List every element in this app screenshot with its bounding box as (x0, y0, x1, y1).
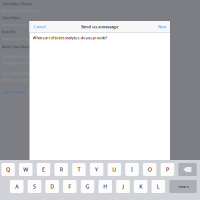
staticText: W (23, 166, 28, 173)
button[interactable]: T (72, 163, 86, 176)
staticText: Next (158, 24, 166, 29)
staticText: Send us a message (81, 24, 118, 29)
staticText: A (15, 183, 18, 190)
staticText: P (166, 166, 169, 173)
staticText: UserVoice (2, 15, 20, 20)
staticText: UserVoice helps you gather feedback from… (2, 54, 105, 59)
staticText: I (131, 166, 133, 173)
staticText: Q (6, 166, 10, 173)
staticText: Add UserVoice (2, 44, 30, 49)
button[interactable]: Cancel (33, 20, 57, 33)
button[interactable]: J (116, 180, 130, 193)
staticText: E (42, 166, 45, 173)
button[interactable]: return (169, 180, 197, 193)
staticText: T (77, 166, 80, 173)
button[interactable]: Y (90, 163, 103, 176)
button[interactable]: UserVoice Demo (2, 1, 112, 15)
button[interactable]: UserVoice (2, 15, 112, 29)
staticText: H (103, 183, 107, 190)
button[interactable]: I (125, 163, 139, 176)
button[interactable]: H (98, 180, 112, 193)
staticText: directly in your app with the full SDK. (2, 77, 64, 82)
staticText: The Help Center lets your customers find… (2, 71, 89, 76)
button[interactable]: Initech (2, 29, 112, 43)
staticText: initech.uservoice.com (2, 36, 40, 41)
staticText: feedback.uservoice.com (2, 22, 44, 27)
staticText: F (68, 183, 71, 190)
button[interactable]: R (54, 163, 68, 176)
staticText: K (139, 183, 142, 190)
staticText: J (122, 183, 123, 190)
staticText: To get started, add your UserVoice site … (2, 60, 80, 66)
staticText: Initech (2, 29, 16, 34)
button[interactable]: Delete (178, 163, 197, 176)
button[interactable]: U (107, 163, 121, 176)
staticText: D (50, 183, 54, 190)
button[interactable]: P (161, 163, 174, 176)
staticText: return (177, 184, 188, 189)
button[interactable]: Learn more (2, 89, 24, 95)
button[interactable]: Q (1, 163, 15, 176)
staticText: UserVoice Demo (2, 1, 32, 6)
staticText: L (157, 183, 160, 190)
staticText: Y (95, 166, 98, 173)
staticText: S (33, 183, 36, 190)
button[interactable]: S (28, 180, 41, 193)
button[interactable]: E (37, 163, 50, 176)
button[interactable]: Next (142, 20, 166, 33)
staticText: U (112, 166, 116, 173)
button[interactable]: A (10, 180, 23, 193)
staticText: Learn more (2, 89, 24, 94)
button[interactable]: D (45, 180, 59, 193)
button[interactable]: L (152, 180, 165, 193)
button[interactable]: F (63, 180, 77, 193)
staticText: O (148, 166, 152, 173)
button[interactable]: W (19, 163, 32, 176)
button[interactable]: G (81, 180, 94, 193)
staticText: R (60, 166, 63, 173)
staticText: Cancel (33, 24, 45, 29)
staticText: What sort of ticket analytics do you pro… (32, 35, 107, 40)
button[interactable]: K (134, 180, 147, 193)
button[interactable]: O (143, 163, 156, 176)
staticText: G (85, 183, 89, 190)
